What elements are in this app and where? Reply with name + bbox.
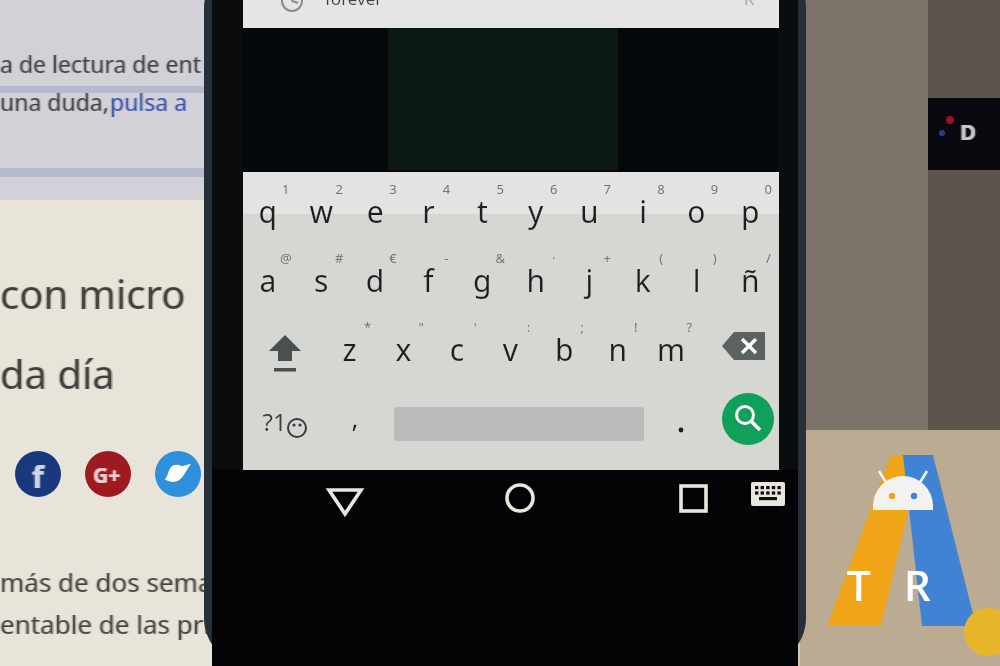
button[interactable]: h (510, 248, 562, 310)
button[interactable]: q (242, 180, 294, 240)
button[interactable]: m (646, 318, 698, 380)
button[interactable]: o (671, 180, 723, 240)
button[interactable]: Home (490, 472, 552, 530)
button[interactable]: Recents (662, 472, 724, 530)
button[interactable]: Comma (330, 390, 384, 452)
button[interactable]: u (564, 180, 616, 240)
button[interactable]: r (403, 180, 455, 240)
button[interactable]: b (538, 318, 590, 380)
button[interactable]: e (349, 180, 401, 240)
button[interactable]: i (617, 180, 669, 240)
button[interactable]: k (617, 248, 669, 310)
button[interactable]: a (242, 248, 294, 310)
button[interactable]: Backspace (712, 318, 778, 380)
button[interactable]: n (592, 318, 644, 380)
button[interactable]: w (296, 180, 348, 240)
button[interactable]: Shift (250, 318, 320, 380)
button[interactable]: p (724, 180, 776, 240)
button[interactable]: z (324, 318, 376, 380)
button[interactable]: Symbols and emoji (250, 390, 320, 452)
button[interactable]: j (564, 248, 616, 310)
button[interactable]: Search (720, 390, 778, 450)
button[interactable]: y (510, 180, 562, 240)
button[interactable]: Period (655, 390, 709, 452)
button[interactable]: l (671, 248, 723, 310)
button[interactable]: x (378, 318, 430, 380)
button[interactable]: v (485, 318, 537, 380)
button[interactable]: f (403, 248, 455, 310)
button[interactable]: c (431, 318, 483, 380)
button[interactable]: g (456, 248, 508, 310)
button[interactable]: t (456, 180, 508, 240)
button[interactable]: Back (315, 472, 377, 530)
button[interactable]: Switch keyboard (740, 472, 798, 530)
button[interactable]: d (349, 248, 401, 310)
button[interactable]: Space (392, 390, 648, 452)
button[interactable]: ñ (724, 248, 776, 310)
button[interactable]: s (296, 248, 348, 310)
